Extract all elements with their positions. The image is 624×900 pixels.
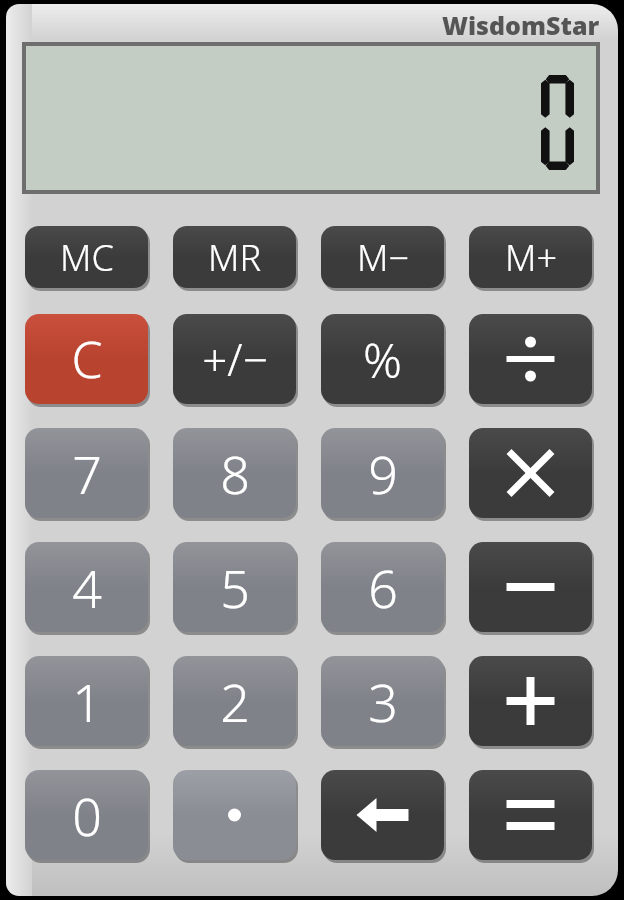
staticText: 9 — [368, 438, 398, 509]
button[interactable]: 1 — [25, 656, 148, 746]
button[interactable]: M+ — [469, 226, 592, 288]
button[interactable]: Add — [469, 656, 592, 746]
button[interactable]: Equals — [469, 770, 592, 860]
staticText: 0 — [72, 780, 102, 851]
button[interactable]: +/− — [173, 314, 296, 404]
staticText: 2 — [220, 666, 250, 737]
button[interactable]: 8 — [173, 428, 296, 518]
button[interactable]: 5 — [173, 542, 296, 632]
button[interactable]: MC — [25, 226, 148, 288]
staticText: C — [71, 325, 103, 393]
staticText: MR — [208, 233, 261, 282]
button[interactable]: Backspace — [321, 770, 444, 860]
staticText: MC — [60, 233, 114, 282]
button[interactable]: Multiply — [469, 428, 592, 518]
button[interactable]: 6 — [321, 542, 444, 632]
staticText: +/− — [202, 329, 268, 389]
button[interactable]: 0 — [25, 770, 148, 860]
button[interactable]: Decimal point — [173, 770, 296, 860]
staticText: 6 — [368, 552, 398, 623]
button[interactable]: 9 — [321, 428, 444, 518]
button[interactable]: C — [25, 314, 148, 404]
staticText: 1 — [72, 666, 102, 737]
staticText: M− — [357, 233, 409, 282]
button[interactable]: Divide — [469, 314, 592, 404]
staticText: 4 — [72, 552, 102, 623]
button[interactable]: M− — [321, 226, 444, 288]
button[interactable]: 4 — [25, 542, 148, 632]
staticText: 8 — [220, 438, 250, 509]
button[interactable]: Subtract — [469, 542, 592, 632]
staticText: % — [363, 327, 402, 392]
staticText: 5 — [220, 552, 250, 623]
button[interactable]: MR — [173, 226, 296, 288]
button[interactable]: % — [321, 314, 444, 404]
staticText: WisdomStar — [442, 8, 600, 38]
staticText: 7 — [72, 438, 102, 509]
button[interactable]: 2 — [173, 656, 296, 746]
button[interactable]: 3 — [321, 656, 444, 746]
button[interactable]: 7 — [25, 428, 148, 518]
staticText: M+ — [505, 233, 557, 282]
staticText: 3 — [368, 666, 398, 737]
